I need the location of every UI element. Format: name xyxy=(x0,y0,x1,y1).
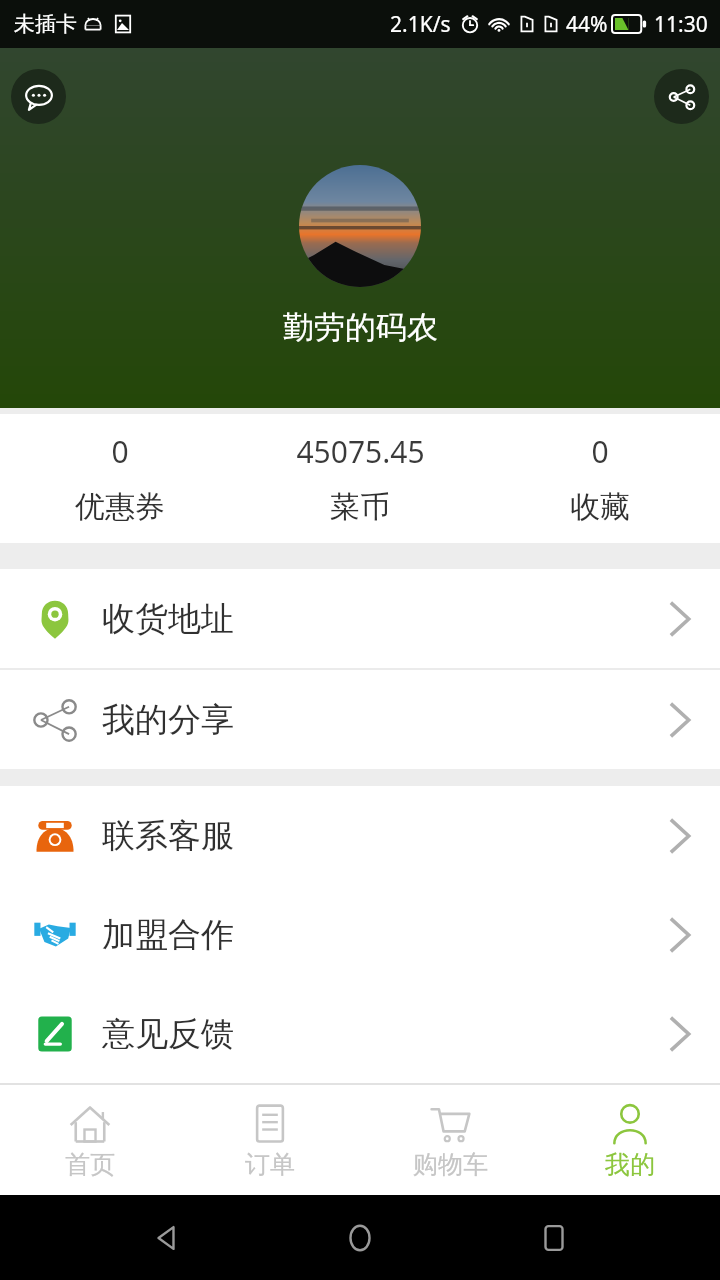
staticText: 优惠券 xyxy=(75,488,165,526)
button[interactable]: 联系客服 xyxy=(0,786,720,885)
staticText: 加盟合作 xyxy=(102,914,234,956)
staticText: 我的分享 xyxy=(102,699,234,741)
staticText: 0 xyxy=(591,431,609,472)
staticText: 收货地址 xyxy=(102,598,234,640)
button[interactable]: 0 xyxy=(480,414,720,543)
button[interactable]: 收货地址 xyxy=(0,569,720,668)
staticText: 0 xyxy=(111,431,129,472)
staticText: 收藏 xyxy=(570,488,630,526)
button[interactable]: 意见反馈 xyxy=(0,984,720,1083)
staticText: 勤劳的码农 xyxy=(283,308,438,347)
button[interactable]: 我的 xyxy=(540,1085,720,1195)
button[interactable]: 45075.45 xyxy=(240,414,480,543)
staticText: 11:30 xyxy=(654,10,708,39)
button[interactable]: 我的分享 xyxy=(0,670,720,769)
staticText: 购物车 xyxy=(413,1149,488,1180)
staticText: 2.1K/s xyxy=(390,10,451,39)
button[interactable]: Messages xyxy=(11,69,66,124)
button[interactable]: 0 xyxy=(0,414,240,543)
staticText: 未插卡 xyxy=(14,11,77,37)
staticText: 首页 xyxy=(65,1149,115,1180)
button[interactable]: 首页 xyxy=(0,1085,180,1195)
button[interactable]: 购物车 xyxy=(360,1085,540,1195)
button[interactable]: Back xyxy=(138,1210,194,1266)
staticText: 45075.45 xyxy=(296,431,425,472)
staticText: 订单 xyxy=(245,1149,295,1180)
staticText: 44% xyxy=(566,10,608,39)
staticText: 意见反馈 xyxy=(102,1013,234,1055)
button[interactable]: Recents xyxy=(526,1210,582,1266)
button[interactable]: Share xyxy=(654,69,709,124)
button[interactable]: Profile photo xyxy=(299,165,421,287)
staticText: 菜币 xyxy=(330,488,390,526)
button[interactable]: 加盟合作 xyxy=(0,885,720,984)
staticText: 我的 xyxy=(605,1149,655,1180)
button[interactable]: 订单 xyxy=(180,1085,360,1195)
button[interactable]: Home xyxy=(332,1210,388,1266)
staticText: 联系客服 xyxy=(102,815,234,857)
